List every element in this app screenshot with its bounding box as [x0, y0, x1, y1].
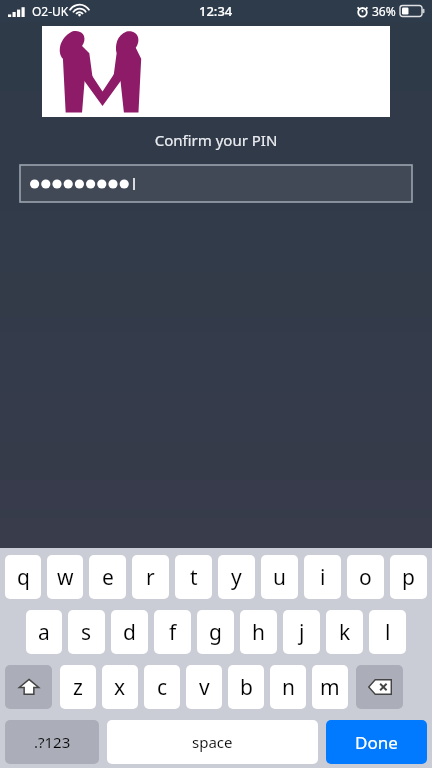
button[interactable]: j	[283, 610, 320, 654]
staticText: u	[273, 563, 286, 592]
staticText: k	[339, 618, 351, 647]
staticText: s	[81, 618, 92, 647]
staticText: x	[114, 673, 126, 702]
button[interactable]: c	[144, 665, 180, 709]
staticText: e	[102, 563, 114, 592]
button[interactable]: z	[60, 665, 96, 709]
staticText: n	[282, 673, 295, 702]
staticText: t	[190, 563, 198, 592]
staticText: g	[209, 618, 222, 647]
button[interactable]: g	[197, 610, 234, 654]
staticText: .?123	[34, 732, 71, 752]
staticText: z	[73, 673, 83, 702]
staticText: m	[320, 673, 340, 702]
button[interactable]	[20, 165, 412, 202]
button[interactable]: i	[304, 555, 341, 599]
button[interactable]: w	[47, 555, 83, 599]
button[interactable]: h	[240, 610, 277, 654]
staticText: space	[192, 732, 233, 752]
staticText: b	[240, 673, 253, 702]
staticText: v	[199, 673, 210, 702]
staticText: c	[157, 673, 168, 702]
staticText: f	[169, 618, 177, 647]
button[interactable]: Done	[326, 720, 427, 764]
button[interactable]: y	[218, 555, 255, 599]
button[interactable]: u	[261, 555, 298, 599]
staticText: i	[320, 563, 326, 592]
button[interactable]: m	[312, 665, 348, 709]
staticText: r	[146, 563, 155, 592]
staticText: l	[385, 618, 391, 647]
button[interactable]: s	[68, 610, 105, 654]
staticText: Done	[355, 731, 398, 754]
button[interactable]: Backspace	[356, 665, 403, 709]
staticText: d	[123, 618, 136, 647]
button[interactable]: space	[107, 720, 318, 764]
staticText: O2-UK	[32, 3, 69, 19]
staticText: q	[17, 563, 30, 592]
staticText: w	[57, 563, 74, 592]
staticText: Confirm your PIN	[0, 130, 432, 150]
button[interactable]: q	[5, 555, 41, 599]
staticText: a	[38, 618, 50, 647]
staticText: 12:34	[199, 2, 233, 20]
staticText: o	[359, 563, 372, 592]
button[interactable]: l	[369, 610, 406, 654]
button[interactable]: b	[228, 665, 264, 709]
staticText: y	[231, 563, 242, 592]
button[interactable]: .?123	[5, 720, 99, 764]
button[interactable]: Shift	[5, 665, 52, 709]
staticText: 36%	[372, 3, 396, 19]
button[interactable]: e	[89, 555, 126, 599]
button[interactable]: n	[270, 665, 306, 709]
button[interactable]: x	[102, 665, 138, 709]
button[interactable]: d	[111, 610, 148, 654]
button[interactable]: f	[154, 610, 191, 654]
button[interactable]: o	[347, 555, 384, 599]
staticText: h	[252, 618, 265, 647]
button[interactable]: r	[132, 555, 169, 599]
button[interactable]: t	[175, 555, 212, 599]
staticText: j	[299, 618, 305, 647]
staticText: p	[402, 563, 415, 592]
button[interactable]: p	[390, 555, 427, 599]
button[interactable]: v	[186, 665, 222, 709]
button[interactable]: a	[26, 610, 62, 654]
button[interactable]: k	[326, 610, 363, 654]
